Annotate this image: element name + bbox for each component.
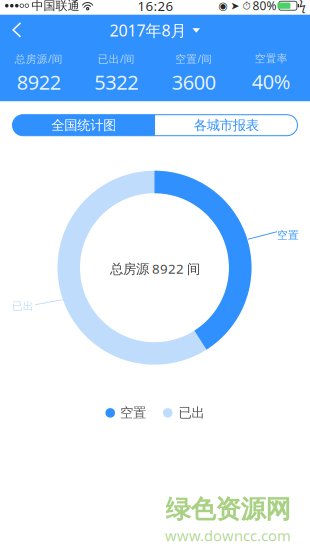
staticText: 总房源 8922 间 <box>110 260 200 277</box>
button[interactable]: 各城市报表 <box>155 115 297 136</box>
staticText: 全国统计图 <box>51 117 116 133</box>
staticText: ◉ ➤ ⏱ <box>218 0 250 12</box>
staticText: 空置/间 <box>175 52 212 66</box>
staticText: 中国联通 <box>32 0 80 13</box>
button[interactable]: 全国统计图 <box>12 115 155 136</box>
staticText: 80% <box>252 0 276 14</box>
staticText: 空置 <box>120 405 146 421</box>
staticText: 总房源/间 <box>15 52 63 66</box>
button[interactable]: Back <box>0 15 34 45</box>
staticText: 已出 <box>12 300 34 313</box>
staticText: 已出/间 <box>98 52 135 66</box>
staticText: 3600 <box>172 69 216 95</box>
staticText: 已出 <box>178 405 204 421</box>
staticText: 8922 <box>17 69 61 95</box>
staticText: 各城市报表 <box>194 117 259 133</box>
staticText: 绿色资源网 <box>165 494 290 525</box>
staticText: 2017年8月 <box>109 20 186 41</box>
staticText: 空置 <box>277 229 299 242</box>
staticText: www.downcc.com <box>165 526 291 545</box>
staticText: 5322 <box>94 69 138 95</box>
staticText: ϟ <box>299 0 306 14</box>
staticText: 16:26 <box>137 0 173 15</box>
staticText: 空置率 <box>255 52 288 65</box>
staticText: 40% <box>252 68 291 95</box>
